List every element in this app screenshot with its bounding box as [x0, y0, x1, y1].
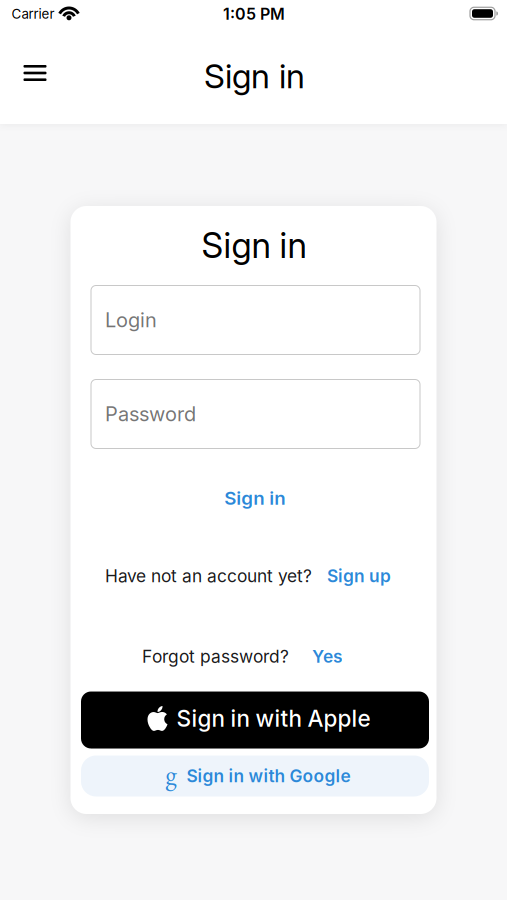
staticText: Yes: [312, 646, 343, 667]
button[interactable]: g: [81, 755, 429, 796]
staticText: Login: [105, 308, 157, 332]
button[interactable]: Yes: [312, 646, 343, 667]
staticText: g: [165, 757, 176, 791]
staticText: Have not an account yet?: [105, 566, 312, 586]
staticText: Sign up: [327, 566, 391, 586]
staticText: Password: [105, 402, 196, 426]
button[interactable]: Sign up: [327, 566, 391, 586]
staticText: Carrier: [11, 6, 54, 22]
staticText: Sign in: [224, 487, 285, 509]
button[interactable]: Menu: [13, 51, 57, 95]
button[interactable]: Sign in: [216, 481, 293, 515]
staticText: Sign in with Apple: [176, 705, 370, 732]
staticText: Sign in with Google: [186, 766, 350, 786]
button[interactable]: Sign in with Apple: [81, 691, 429, 748]
staticText: 1:05 PM: [223, 5, 285, 23]
staticText: Sign in: [204, 56, 305, 96]
staticText: Forgot password?: [142, 646, 289, 667]
staticText: Sign in: [201, 225, 306, 266]
